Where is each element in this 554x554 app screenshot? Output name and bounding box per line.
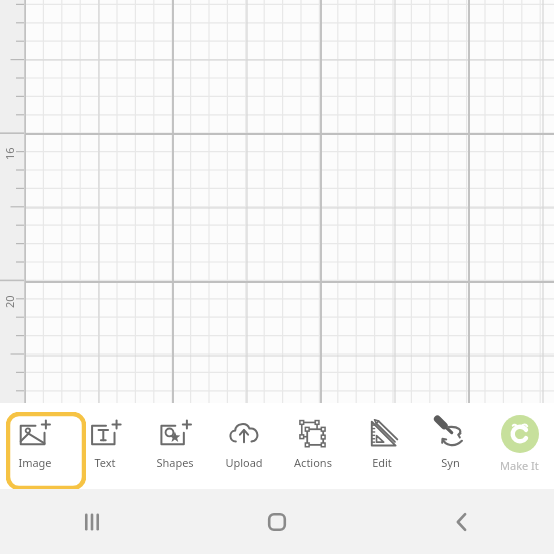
- button[interactable]: Syn: [416, 403, 485, 489]
- staticText: Upload: [225, 455, 263, 470]
- staticText: Text: [94, 455, 116, 470]
- staticText: Edit: [372, 455, 392, 470]
- button[interactable]: Make It: [485, 403, 554, 489]
- staticText: Make It: [500, 458, 539, 473]
- staticText: 16: [2, 147, 17, 160]
- button[interactable]: Home: [184, 489, 369, 554]
- staticText: Image: [18, 455, 52, 470]
- button[interactable]: Upload: [209, 403, 278, 489]
- button[interactable]: Edit: [347, 403, 416, 489]
- button[interactable]: Recents: [0, 489, 184, 554]
- button[interactable]: Image: [0, 403, 70, 489]
- staticText: Actions: [294, 455, 332, 470]
- button[interactable]: Actions: [278, 403, 347, 489]
- button[interactable]: Shapes: [140, 403, 209, 489]
- staticText: Syn: [441, 455, 460, 470]
- button[interactable]: Text: [70, 403, 140, 489]
- button[interactable]: Back: [369, 489, 554, 554]
- staticText: 20: [2, 295, 17, 308]
- staticText: Shapes: [156, 455, 194, 470]
